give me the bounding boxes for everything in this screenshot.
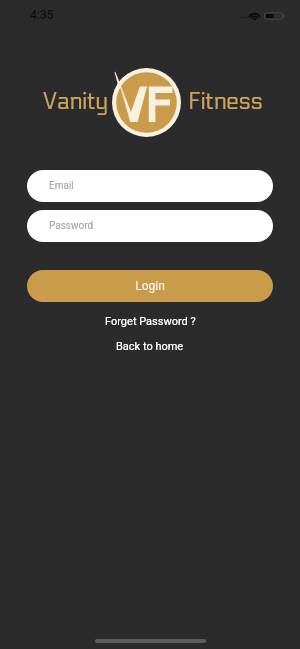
staticText: Fitness [188, 88, 263, 115]
staticText: Email [49, 180, 74, 192]
button[interactable]: Password [27, 210, 273, 242]
staticText: Vanity [43, 88, 108, 115]
button[interactable]: Back to home [116, 340, 184, 353]
button[interactable]: Login [27, 270, 273, 302]
staticText: 4:35 [30, 8, 54, 22]
button[interactable]: Email [27, 170, 273, 202]
staticText: Password [49, 220, 94, 232]
button[interactable]: Forget Password ? [105, 315, 196, 328]
staticText: Login [135, 279, 165, 293]
